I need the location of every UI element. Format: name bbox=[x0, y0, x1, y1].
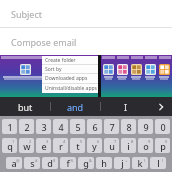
button[interactable]: 0 bbox=[155, 138, 170, 153]
staticText: Downloaded apps bbox=[45, 75, 88, 82]
staticText: 5 bbox=[80, 139, 83, 144]
staticText: 1 bbox=[12, 139, 15, 144]
staticText: + bbox=[125, 158, 128, 163]
button[interactable] bbox=[0, 55, 98, 97]
staticText: Create folder bbox=[45, 57, 76, 64]
button[interactable]: $ bbox=[42, 157, 58, 169]
button[interactable]: - bbox=[96, 157, 112, 169]
staticText: 5 bbox=[75, 121, 81, 133]
staticText: 2 bbox=[29, 139, 32, 144]
button[interactable]: 5 bbox=[70, 138, 85, 153]
staticText: & bbox=[89, 158, 92, 163]
staticText: but bbox=[18, 101, 33, 113]
button[interactable]: 9 bbox=[138, 138, 153, 153]
button[interactable]: % bbox=[60, 157, 76, 169]
staticText: 2 bbox=[24, 121, 30, 133]
staticText: a bbox=[11, 157, 17, 169]
button[interactable]: & bbox=[78, 157, 94, 169]
button[interactable]: Subject bbox=[0, 0, 172, 27]
staticText: 3 bbox=[41, 121, 47, 133]
staticText: f bbox=[66, 157, 70, 169]
button[interactable]: 3 bbox=[36, 119, 51, 134]
staticText: ) bbox=[162, 158, 164, 163]
button[interactable]: Downloaded apps bbox=[42, 74, 98, 83]
button[interactable]: 2 bbox=[19, 119, 34, 134]
button[interactable]: 8 bbox=[121, 138, 136, 153]
staticText: g bbox=[83, 157, 89, 169]
button[interactable]: 1 bbox=[2, 138, 17, 153]
button[interactable]: 6 bbox=[87, 138, 102, 153]
button[interactable]: Compose email bbox=[0, 28, 172, 55]
staticText: l bbox=[157, 157, 160, 169]
staticText: 0 bbox=[165, 139, 168, 144]
staticText: Compose email bbox=[11, 36, 77, 48]
staticText: h bbox=[101, 157, 107, 169]
staticText: y bbox=[92, 140, 97, 152]
staticText: 4 bbox=[58, 121, 64, 133]
button[interactable]: ( bbox=[132, 157, 148, 169]
staticText: % bbox=[70, 158, 74, 163]
staticText: 8 bbox=[126, 121, 132, 133]
staticText: Uninstall/disable apps bbox=[45, 85, 97, 92]
button[interactable]: 7 bbox=[104, 138, 119, 153]
staticText: 6 bbox=[97, 139, 100, 144]
staticText: 9 bbox=[148, 139, 151, 144]
button[interactable]: 3 bbox=[36, 138, 51, 153]
staticText: 8 bbox=[131, 139, 134, 144]
button[interactable] bbox=[101, 55, 172, 97]
staticText: @ bbox=[16, 158, 20, 163]
button[interactable]: 1 bbox=[2, 119, 17, 134]
button[interactable]: # bbox=[24, 157, 40, 169]
staticText: t bbox=[76, 140, 80, 152]
button[interactable]: 4 bbox=[53, 138, 68, 153]
button[interactable]: Create folder bbox=[42, 56, 98, 64]
staticText: i bbox=[127, 140, 130, 152]
staticText: Subject bbox=[11, 8, 43, 20]
staticText: 9 bbox=[143, 121, 149, 133]
button[interactable]: 4 bbox=[53, 119, 68, 134]
staticText: p bbox=[160, 140, 166, 152]
button[interactable]: Sort by bbox=[42, 65, 98, 73]
button[interactable]: Create folder bbox=[42, 56, 98, 93]
staticText: q bbox=[7, 140, 13, 152]
staticText: $ bbox=[53, 158, 56, 163]
staticText: 6 bbox=[92, 121, 98, 133]
staticText: # bbox=[35, 158, 38, 163]
staticText: 7 bbox=[114, 139, 117, 144]
button[interactable]: 8 bbox=[121, 119, 136, 134]
button[interactable]: and bbox=[51, 97, 100, 116]
staticText: 1 bbox=[7, 121, 13, 133]
staticText: 7 bbox=[109, 121, 115, 133]
button[interactable]: @ bbox=[6, 157, 22, 169]
staticText: k bbox=[137, 157, 143, 169]
button[interactable]: 7 bbox=[104, 119, 119, 134]
button[interactable]: 9 bbox=[138, 119, 153, 134]
staticText: I bbox=[124, 101, 128, 113]
button[interactable]: 0 bbox=[155, 119, 170, 134]
button[interactable]: 2 bbox=[19, 138, 34, 153]
button[interactable]: Uninstall/disable apps bbox=[42, 84, 98, 93]
staticText: j bbox=[121, 157, 124, 169]
staticText: e bbox=[41, 140, 47, 152]
staticText: u bbox=[109, 140, 115, 152]
staticText: 0 bbox=[160, 121, 166, 133]
staticText: w bbox=[23, 140, 31, 152]
button[interactable]: 6 bbox=[87, 119, 102, 134]
button[interactable]: but bbox=[0, 97, 50, 116]
staticText: s bbox=[30, 157, 35, 169]
staticText: Sort by bbox=[45, 66, 62, 73]
staticText: 3 bbox=[46, 139, 49, 144]
staticText: ( bbox=[144, 158, 146, 163]
staticText: d bbox=[47, 157, 53, 169]
staticText: - bbox=[108, 158, 110, 163]
button[interactable]: ) bbox=[150, 157, 166, 169]
staticText: 4 bbox=[63, 139, 66, 144]
button[interactable]: + bbox=[114, 157, 130, 169]
button[interactable]: I bbox=[101, 97, 150, 116]
staticText: r bbox=[59, 140, 63, 152]
button[interactable]: 5 bbox=[70, 119, 85, 134]
button[interactable]: More suggestions bbox=[150, 97, 172, 116]
staticText: and bbox=[67, 101, 84, 113]
staticText: o bbox=[143, 140, 149, 152]
